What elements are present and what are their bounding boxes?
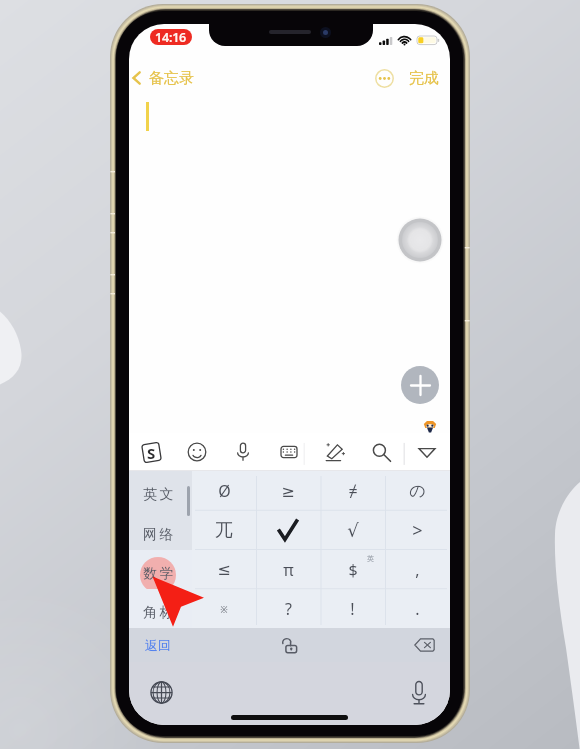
staticText: ≥ — [281, 482, 295, 501]
button[interactable]: AssistiveTouch — [396, 216, 444, 264]
button[interactable]: ≤ — [192, 550, 256, 589]
button[interactable]: 网络 — [129, 511, 192, 550]
staticText: π — [283, 559, 294, 581]
staticText: 备忘录 — [149, 69, 194, 87]
button[interactable]: Handwriting — [312, 433, 358, 471]
button[interactable]: π — [256, 550, 320, 589]
button[interactable]: . — [385, 589, 450, 628]
button[interactable]: Search — [358, 433, 404, 471]
button[interactable]: 完成 — [405, 65, 443, 91]
staticText: ? — [285, 598, 292, 620]
button[interactable]: Profile — [423, 420, 437, 433]
staticText: 数学 — [143, 565, 177, 583]
staticText: 角标 — [143, 604, 177, 622]
button[interactable]: 兀 — [192, 511, 256, 550]
button[interactable]: 备忘录 — [129, 65, 200, 91]
button[interactable]: Voice input — [220, 433, 266, 471]
button[interactable]: $ — [320, 550, 385, 589]
button[interactable]: ! — [320, 589, 385, 628]
button[interactable]: Dictation — [403, 677, 434, 708]
staticText: 返回 — [145, 637, 171, 653]
button[interactable]: 英文 — [129, 471, 192, 511]
button[interactable]: Delete — [408, 629, 440, 661]
staticText: 完成 — [409, 69, 439, 87]
button[interactable]: ≥ — [256, 471, 320, 511]
staticText: ≠ — [348, 480, 358, 502]
button[interactable]: Keyboard layout — [266, 433, 312, 471]
staticText: , — [415, 559, 420, 581]
button[interactable]: Collapse keyboard — [404, 433, 450, 471]
button[interactable]: 角标 — [129, 589, 192, 628]
staticText: 网络 — [143, 526, 177, 544]
button[interactable]: > — [385, 511, 450, 550]
button[interactable]: Switch keyboard — [146, 677, 177, 708]
button[interactable]: Ø — [192, 471, 256, 511]
staticText: √ — [347, 520, 359, 541]
button[interactable]: Sogou input — [129, 433, 174, 471]
button[interactable]: ? — [256, 589, 320, 628]
button[interactable]: ≠ — [320, 471, 385, 511]
button[interactable]: Emoji — [174, 433, 220, 471]
staticText: > — [412, 518, 423, 543]
staticText: ≤ — [217, 560, 231, 579]
staticText: . — [415, 598, 420, 620]
button[interactable]: 返回 — [138, 632, 178, 658]
button[interactable]: √ — [320, 511, 385, 550]
staticText: ! — [350, 598, 355, 620]
staticText: 14:16 — [155, 29, 187, 45]
staticText: $ — [348, 559, 358, 581]
staticText: ※ — [220, 603, 228, 615]
button[interactable]: ※ — [192, 589, 256, 628]
staticText: の — [409, 481, 426, 501]
staticText: Ø — [218, 480, 231, 502]
staticText: 英文 — [143, 486, 177, 504]
button[interactable] — [256, 511, 320, 550]
staticText: 兀 — [215, 519, 233, 542]
staticText: S — [147, 443, 156, 462]
button[interactable]: Lock keyboard — [276, 631, 304, 659]
button[interactable]: Add — [401, 366, 439, 404]
button[interactable]: の — [385, 471, 450, 511]
button[interactable]: More options — [370, 65, 398, 91]
staticText: 英 — [367, 554, 374, 563]
button[interactable]: 数学 — [129, 550, 192, 589]
button[interactable]: , — [385, 550, 450, 589]
